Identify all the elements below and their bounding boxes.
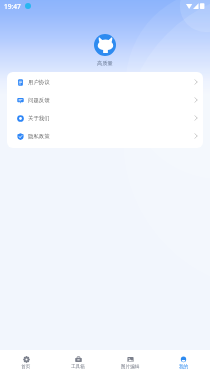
staticText: 19:47 <box>4 2 21 11</box>
button[interactable]: 我的 <box>157 350 210 375</box>
staticText: 关于我们 <box>28 115 50 122</box>
staticText: 图片编辑 <box>121 364 140 370</box>
button[interactable]: 问题反馈 <box>7 91 203 109</box>
staticText: 工具箱 <box>71 364 85 370</box>
staticText: 首页 <box>21 364 31 370</box>
button[interactable]: 工具箱 <box>52 350 104 375</box>
staticText: 用户协议 <box>28 79 50 86</box>
button[interactable]: 首页 <box>0 350 52 375</box>
button[interactable]: 图片编辑 <box>104 350 157 375</box>
staticText: 我的 <box>179 364 189 370</box>
staticText: 高质量 <box>97 60 113 67</box>
staticText: 问题反馈 <box>28 97 50 104</box>
staticText: 隐私政策 <box>28 133 50 140</box>
button[interactable]: 隐私政策 <box>7 127 203 145</box>
button[interactable]: 用户协议 <box>7 73 203 91</box>
button[interactable]: 关于我们 <box>7 109 203 127</box>
